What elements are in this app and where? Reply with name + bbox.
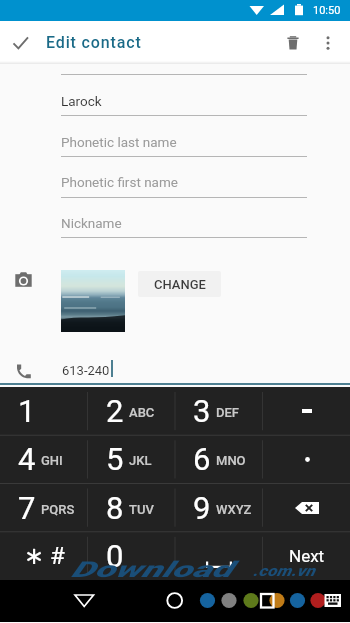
button[interactable]: 4 — [0, 435, 88, 483]
button[interactable]: Next — [263, 532, 350, 580]
button[interactable]: 3 — [175, 387, 263, 435]
staticText: Nickname — [61, 215, 122, 231]
button[interactable]: 7 — [0, 484, 88, 532]
staticText: JKL — [129, 453, 152, 468]
staticText: WXYZ — [216, 502, 252, 517]
staticText: ABC — [129, 405, 155, 420]
button[interactable]: Space — [175, 532, 263, 580]
button[interactable]: Switch keyboard — [320, 580, 346, 622]
staticText: ∗ # — [24, 542, 65, 570]
staticText: 6 — [193, 441, 211, 477]
staticText: 10:50 — [313, 4, 341, 17]
staticText: Larock — [61, 93, 102, 109]
button[interactable]: 1 — [0, 387, 88, 435]
staticText: GHI — [41, 453, 63, 468]
staticText: Phonetic first name — [61, 174, 178, 190]
button[interactable]: Home — [155, 580, 195, 622]
staticText: Next — [289, 546, 325, 566]
button[interactable]: Contact photo — [61, 270, 125, 332]
button[interactable]: Change photo — [13, 267, 35, 289]
staticText: CHANGE — [154, 277, 206, 292]
button[interactable]: 2 — [88, 387, 176, 435]
button[interactable]: Backspace — [263, 484, 350, 532]
staticText: 0 — [106, 538, 124, 574]
staticText: Download — [71, 557, 232, 583]
staticText: 7 — [18, 490, 36, 526]
staticText: 5 — [106, 441, 124, 477]
button[interactable]: Save contact — [1, 23, 41, 63]
staticText: MNO — [216, 453, 246, 468]
button[interactable]: Phone number — [15, 362, 33, 380]
staticText: 9 — [193, 490, 211, 526]
staticText: Edit contact — [46, 33, 142, 52]
button[interactable]: Dash — [263, 387, 350, 435]
button[interactable]: Back — [64, 580, 104, 622]
button[interactable]: More options — [308, 23, 348, 63]
staticText: 2 — [106, 393, 124, 429]
button[interactable]: 6 — [175, 435, 263, 483]
staticText: Phonetic last name — [61, 134, 177, 150]
button[interactable]: 9 — [175, 484, 263, 532]
staticText: DEF — [216, 405, 239, 420]
staticText: TUV — [129, 502, 154, 517]
staticText: 1 — [18, 393, 36, 429]
button[interactable]: CHANGE — [138, 271, 221, 297]
staticText: 8 — [106, 490, 124, 526]
staticText: .com.vn — [253, 562, 315, 580]
button[interactable]: 5 — [88, 435, 176, 483]
button[interactable]: 0 — [88, 532, 176, 580]
button[interactable]: Period — [263, 435, 350, 483]
staticText: 3 — [193, 393, 211, 429]
staticText: 613-240 — [62, 363, 110, 378]
button[interactable]: Delete contact — [273, 23, 313, 63]
button[interactable]: Symbols — [0, 532, 88, 580]
staticText: PQRS — [41, 502, 75, 517]
button[interactable]: 8 — [88, 484, 176, 532]
staticText: 4 — [18, 441, 36, 477]
